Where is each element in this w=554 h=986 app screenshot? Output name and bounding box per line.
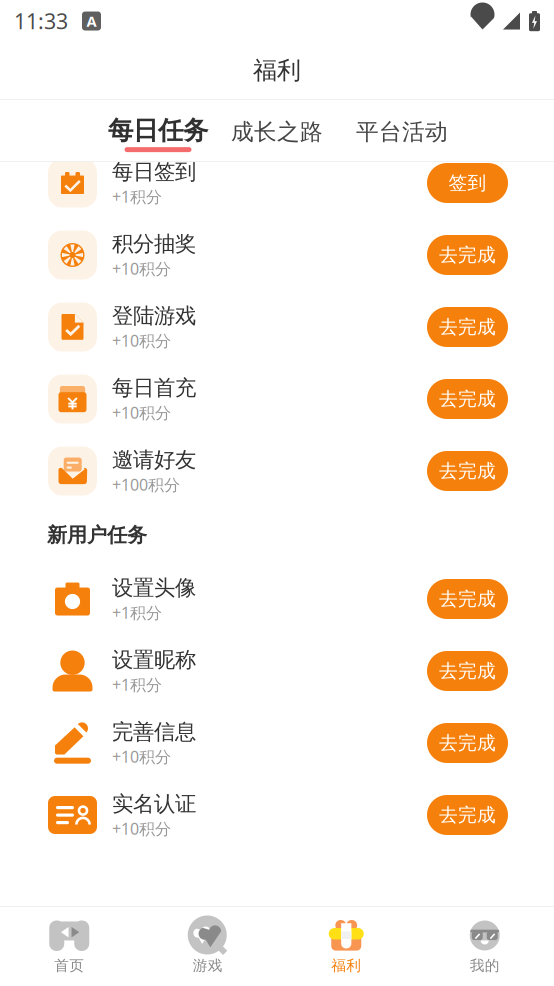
staticText: A (86, 11, 96, 31)
staticText: 去完成 (439, 587, 496, 610)
button[interactable]: 成长之路 (208, 100, 323, 146)
button[interactable]: 福利 (277, 907, 415, 986)
button[interactable]: 设置昵称 (0, 635, 554, 707)
staticText: 游戏 (193, 956, 223, 974)
staticText: 福利 (331, 956, 361, 974)
staticText: +1积分 (112, 602, 162, 623)
button[interactable]: 邀请好友 (0, 435, 554, 507)
staticText: 成长之路 (231, 118, 323, 146)
staticText: 每日首充 (112, 375, 196, 401)
button[interactable]: 平台活动 (323, 100, 448, 146)
button[interactable]: 积分抽奖 (0, 219, 554, 291)
staticText: 去完成 (439, 803, 496, 826)
button[interactable]: 实名认证 (0, 779, 554, 851)
staticText: +10积分 (112, 330, 171, 351)
staticText: 福利 (253, 56, 301, 85)
button[interactable]: 我的 (415, 907, 554, 986)
staticText: 去完成 (439, 731, 496, 754)
button[interactable]: 首页 (0, 907, 138, 986)
button[interactable]: 完善信息 (0, 707, 554, 779)
staticText: 新用户任务 (47, 523, 147, 547)
staticText: 登陆游戏 (112, 303, 196, 329)
staticText: 签到 (448, 171, 486, 194)
staticText: 去完成 (439, 659, 496, 682)
staticText: +1积分 (112, 186, 162, 207)
staticText: 去完成 (439, 459, 496, 482)
staticText: 邀请好友 (112, 447, 196, 473)
staticText: +10积分 (112, 746, 171, 767)
button[interactable]: 设置头像 (0, 563, 554, 635)
staticText: 11:33 (14, 7, 68, 35)
staticText: 设置昵称 (112, 647, 196, 673)
staticText: 平台活动 (356, 118, 448, 146)
staticText: 完善信息 (112, 719, 196, 745)
staticText: 积分抽奖 (112, 231, 196, 257)
button[interactable]: 每日签到 (0, 147, 554, 219)
staticText: 去完成 (439, 315, 496, 338)
staticText: 每日任务 (108, 115, 208, 146)
staticText: 去完成 (439, 387, 496, 410)
staticText: 实名认证 (112, 791, 196, 817)
staticText: 设置头像 (112, 575, 196, 601)
staticText: 每日签到 (112, 159, 196, 185)
staticText: 去完成 (439, 243, 496, 266)
staticText: +10积分 (112, 258, 171, 279)
staticText: +10积分 (112, 402, 171, 423)
button[interactable]: 登陆游戏 (0, 291, 554, 363)
button[interactable]: 每日首充 (0, 363, 554, 435)
button[interactable]: 游戏 (138, 907, 277, 986)
staticText: +100积分 (112, 474, 180, 495)
button[interactable]: 每日任务 (0, 100, 208, 152)
staticText: +10积分 (112, 818, 171, 839)
staticText: +1积分 (112, 674, 162, 695)
staticText: 我的 (470, 956, 500, 974)
staticText: 首页 (54, 956, 84, 974)
